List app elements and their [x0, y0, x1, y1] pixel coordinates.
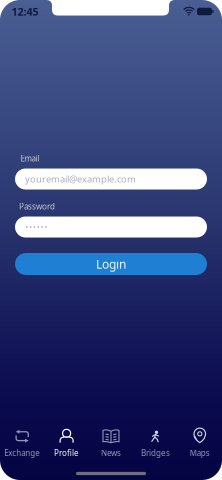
staticText: 12:45 [11, 4, 38, 19]
staticText: Bridges [141, 448, 170, 458]
button[interactable]: Maps [178, 428, 222, 460]
button[interactable]: Login [15, 253, 207, 275]
staticText: Login [96, 256, 126, 272]
button[interactable]: Email [15, 168, 207, 189]
staticText: News [101, 448, 121, 458]
staticText: Profile [54, 448, 79, 458]
staticText: Password [19, 201, 55, 212]
button[interactable]: Profile [44, 428, 89, 460]
button[interactable]: Exchange [0, 428, 44, 460]
staticText: youremail@example.com [25, 173, 136, 185]
button[interactable]: News [89, 428, 133, 460]
button[interactable]: Password [15, 216, 207, 237]
staticText: Maps [190, 448, 210, 458]
button[interactable]: Bridges [133, 428, 178, 460]
staticText: Exchange [4, 448, 40, 458]
staticText: Email [20, 153, 39, 164]
